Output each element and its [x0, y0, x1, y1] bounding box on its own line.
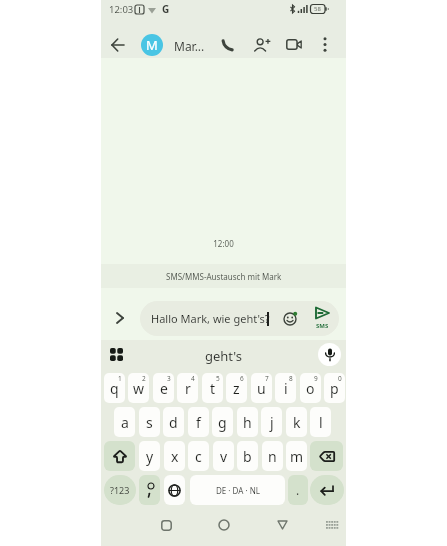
button[interactable] — [326, 521, 339, 530]
staticText: b — [243, 447, 252, 466]
button[interactable]: w — [128, 373, 149, 403]
staticText: p — [330, 379, 339, 398]
staticText: m — [290, 447, 304, 466]
button[interactable]: m — [286, 441, 307, 471]
staticText: k — [293, 413, 301, 432]
button[interactable] — [218, 519, 230, 531]
staticText: DE · DA · NL — [216, 485, 260, 496]
button[interactable]: SMS — [312, 306, 333, 330]
button[interactable] — [161, 520, 172, 531]
staticText: 3 — [167, 374, 171, 383]
button[interactable]: a — [114, 407, 135, 437]
button[interactable]: geht's — [101, 347, 346, 365]
button[interactable]: Mar... — [174, 38, 205, 54]
staticText: w — [133, 379, 145, 398]
staticText: 58 — [314, 5, 321, 13]
staticText: 7 — [265, 374, 269, 383]
button[interactable]: z — [226, 373, 247, 403]
staticText: n — [268, 447, 277, 466]
button[interactable]: y — [139, 441, 160, 471]
button[interactable] — [277, 520, 288, 530]
staticText: u — [257, 379, 266, 398]
staticText: Hallo Mark, wie geht's? — [151, 311, 270, 326]
button[interactable]: c — [188, 441, 209, 471]
staticText: 0 — [338, 374, 342, 383]
staticText: c — [195, 447, 202, 466]
staticText: g — [218, 413, 227, 432]
button[interactable]: h — [237, 407, 258, 437]
button[interactable] — [110, 348, 123, 361]
staticText: SMS — [316, 322, 329, 330]
button[interactable] — [318, 343, 341, 366]
staticText: x — [171, 447, 179, 466]
button[interactable]: i — [275, 373, 296, 403]
button[interactable] — [323, 37, 327, 52]
staticText: 1 — [118, 374, 122, 383]
button[interactable] — [286, 39, 302, 50]
button[interactable]: p — [324, 373, 345, 403]
staticText: t — [210, 379, 216, 398]
staticText: r — [185, 379, 191, 398]
staticText: 5 — [216, 374, 220, 383]
staticText: M — [146, 36, 158, 54]
staticText: a — [121, 413, 129, 432]
button[interactable] — [116, 312, 124, 324]
staticText: 12:03 — [109, 3, 134, 16]
staticText: ?123 — [110, 484, 130, 496]
staticText: . — [296, 482, 300, 498]
button[interactable]: b — [237, 441, 258, 471]
button[interactable]: ?123 — [104, 475, 136, 505]
button[interactable]: g — [212, 407, 233, 437]
staticText: 12:00 — [101, 238, 346, 249]
button[interactable]: u — [251, 373, 272, 403]
button[interactable]: x — [164, 441, 185, 471]
button[interactable] — [139, 475, 160, 505]
staticText: l — [319, 413, 323, 432]
button[interactable]: q — [104, 373, 125, 403]
button[interactable]: t — [202, 373, 223, 403]
staticText: v — [220, 447, 228, 466]
staticText: 4 — [191, 374, 195, 383]
button[interactable]: . — [288, 475, 308, 505]
button[interactable] — [253, 38, 270, 52]
button[interactable] — [310, 441, 343, 471]
button[interactable] — [222, 38, 235, 51]
button[interactable]: d — [163, 407, 184, 437]
button[interactable]: DE · DA · NL — [190, 475, 285, 505]
staticText: q — [110, 379, 119, 398]
button[interactable]: k — [286, 407, 307, 437]
staticText: z — [233, 379, 240, 398]
staticText: j — [270, 413, 274, 432]
button[interactable]: Hallo Mark, wie geht's? — [140, 301, 339, 336]
button[interactable]: j — [261, 407, 282, 437]
staticText: y — [146, 447, 154, 466]
button[interactable]: l — [310, 407, 331, 437]
button[interactable] — [283, 312, 297, 326]
staticText: SMS/MMS-Austausch mit Mark — [166, 271, 282, 282]
button[interactable]: o — [300, 373, 321, 403]
button[interactable]: n — [262, 441, 283, 471]
button[interactable] — [111, 38, 125, 52]
staticText: 9 — [314, 374, 318, 383]
staticText: d — [169, 413, 178, 432]
button[interactable]: M — [141, 34, 163, 56]
button[interactable]: v — [213, 441, 234, 471]
staticText: h — [243, 413, 252, 432]
staticText: s — [146, 413, 153, 432]
staticText: 2 — [142, 374, 146, 383]
staticText: 8 — [289, 374, 293, 383]
button[interactable]: s — [139, 407, 160, 437]
staticText: f — [196, 413, 201, 432]
button[interactable]: f — [188, 407, 209, 437]
staticText: o — [306, 379, 315, 398]
staticText: G — [162, 2, 170, 16]
staticText: i — [284, 379, 288, 398]
button[interactable] — [104, 441, 135, 471]
button[interactable]: e — [153, 373, 174, 403]
staticText: 6 — [240, 374, 244, 383]
button[interactable]: r — [177, 373, 198, 403]
button[interactable] — [164, 475, 185, 505]
button[interactable] — [310, 475, 344, 505]
staticText: e — [160, 379, 168, 398]
